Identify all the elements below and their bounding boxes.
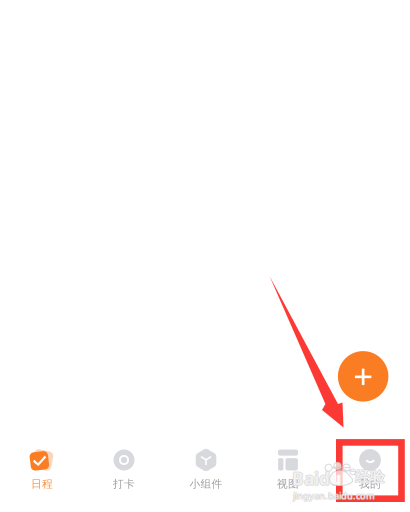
button[interactable]: 小组件 bbox=[165, 443, 247, 495]
staticText: Baidu bbox=[292, 468, 341, 491]
staticText: jingyan.baidu.com bbox=[293, 489, 375, 501]
staticText: 打卡 bbox=[113, 477, 135, 490]
button[interactable]: 视图 bbox=[247, 443, 329, 495]
staticText: jingyan.baidu.com bbox=[292, 489, 374, 502]
button[interactable]: 我的 bbox=[329, 443, 410, 495]
button[interactable]: Add bbox=[338, 351, 388, 402]
staticText: 经验 bbox=[355, 468, 385, 486]
staticText: 我的 bbox=[359, 477, 381, 490]
staticText: 视图 bbox=[277, 477, 299, 490]
staticText: Baidu bbox=[291, 467, 340, 490]
staticText: 经验 bbox=[355, 467, 385, 485]
staticText: 经验 bbox=[356, 468, 386, 486]
staticText: Baidu bbox=[292, 466, 341, 489]
staticText: 日程 bbox=[31, 477, 53, 490]
staticText: Baidu bbox=[293, 467, 342, 490]
staticText: 经验 bbox=[355, 469, 385, 487]
button[interactable]: 日程 bbox=[1, 443, 83, 495]
button[interactable]: 打卡 bbox=[83, 443, 165, 495]
staticText: Baidu bbox=[292, 467, 341, 490]
staticText: jingyan.baidu.com bbox=[293, 490, 375, 503]
staticText: jingyan.baidu.com bbox=[293, 489, 375, 502]
staticText: 经验 bbox=[354, 468, 384, 486]
staticText: 小组件 bbox=[189, 477, 222, 490]
staticText: jingyan.baidu.com bbox=[294, 489, 376, 502]
